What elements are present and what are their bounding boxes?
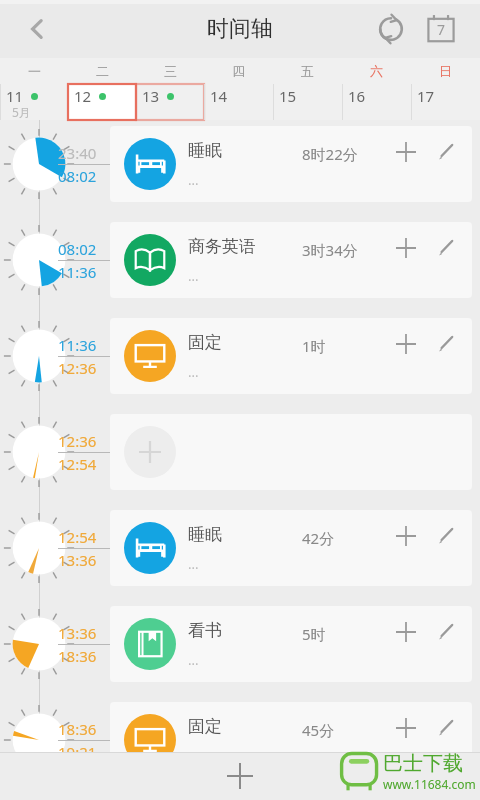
staticText: 12:36 [58, 431, 97, 451]
staticText: 1时 [302, 336, 326, 356]
button[interactable]: 14 [204, 84, 273, 120]
staticText: 19:21 [58, 742, 97, 762]
button[interactable]: 固定 [110, 702, 472, 778]
staticText: 日 [439, 63, 452, 79]
staticText: ... [188, 651, 199, 669]
staticText: 3时34分 [302, 240, 358, 260]
button[interactable]: 睡眠 [110, 126, 472, 202]
button[interactable]: Edit [426, 708, 466, 748]
staticText: 5月 [12, 104, 31, 120]
staticText: 五 [301, 63, 314, 79]
button[interactable]: Edit [426, 516, 466, 556]
staticText: 巴士下载 [383, 751, 463, 776]
button[interactable]: Edit [426, 324, 466, 364]
staticText: 08:02 [58, 166, 97, 186]
button[interactable]: 11 [0, 84, 68, 120]
button[interactable]: Calendar [416, 4, 466, 54]
button[interactable]: Sync [366, 4, 416, 54]
staticText: 7 [437, 20, 446, 39]
staticText: ... [188, 747, 199, 765]
button[interactable]: 看书 [110, 606, 472, 682]
staticText: 12 [74, 86, 92, 106]
button[interactable]: 商务英语 [110, 222, 472, 298]
button[interactable]: Add [386, 132, 426, 172]
button[interactable]: 16 [342, 84, 411, 120]
staticText: 二 [96, 63, 109, 79]
button[interactable]: 睡眠 [110, 510, 472, 586]
staticText: www.11684.com [383, 776, 476, 792]
staticText: 固定 [188, 716, 222, 737]
staticText: 18:36 [58, 719, 97, 739]
staticText: 四 [232, 63, 245, 79]
staticText: ... [188, 555, 199, 573]
staticText: 11:36 [58, 335, 97, 355]
button[interactable]: Add [386, 324, 426, 364]
staticText: 12:54 [58, 527, 97, 547]
staticText: 15 [279, 86, 297, 106]
button[interactable]: Add [386, 612, 426, 652]
staticText: 17 [417, 86, 435, 106]
staticText: 11:36 [58, 262, 97, 282]
staticText: 13:36 [58, 550, 97, 570]
staticText: 时间轴 [207, 15, 273, 43]
staticText: 12:36 [58, 358, 97, 378]
staticText: 睡眠 [188, 140, 222, 161]
staticText: 23:40 [58, 143, 97, 163]
staticText: 08:02 [58, 239, 97, 259]
staticText: 42分 [302, 528, 335, 548]
button[interactable]: Edit [426, 228, 466, 268]
staticText: 18:36 [58, 646, 97, 666]
button[interactable]: Add record [0, 752, 480, 800]
staticText: 16 [348, 86, 366, 106]
staticText: 看书 [188, 620, 222, 641]
staticText: 5时 [302, 624, 326, 644]
staticText: 六 [370, 63, 383, 79]
staticText: 14 [210, 86, 228, 106]
button[interactable]: 17 [411, 84, 480, 120]
button[interactable]: 15 [273, 84, 342, 120]
staticText: 睡眠 [188, 524, 222, 545]
button[interactable]: Add [386, 516, 426, 556]
staticText: 8时22分 [302, 144, 358, 164]
staticText: ... [188, 363, 199, 381]
button[interactable]: Add [386, 708, 426, 748]
button[interactable]: Add [386, 228, 426, 268]
staticText: 三 [164, 63, 177, 79]
staticText: ... [188, 171, 199, 189]
staticText: 固定 [188, 332, 222, 353]
staticText: 商务英语 [188, 236, 256, 257]
button[interactable]: 固定 [110, 318, 472, 394]
button[interactable] [110, 414, 472, 490]
staticText: 一 [28, 63, 41, 79]
button[interactable]: 13 [136, 84, 204, 120]
staticText: 13 [142, 86, 160, 106]
button[interactable]: Edit [426, 132, 466, 172]
staticText: 11 [6, 86, 24, 106]
staticText: 12:54 [58, 454, 97, 474]
button[interactable]: Back [10, 2, 64, 56]
button[interactable]: 12 [68, 84, 136, 120]
button[interactable]: Edit [426, 612, 466, 652]
staticText: 13:36 [58, 623, 97, 643]
staticText: ... [188, 267, 199, 285]
staticText: 45分 [302, 720, 335, 740]
